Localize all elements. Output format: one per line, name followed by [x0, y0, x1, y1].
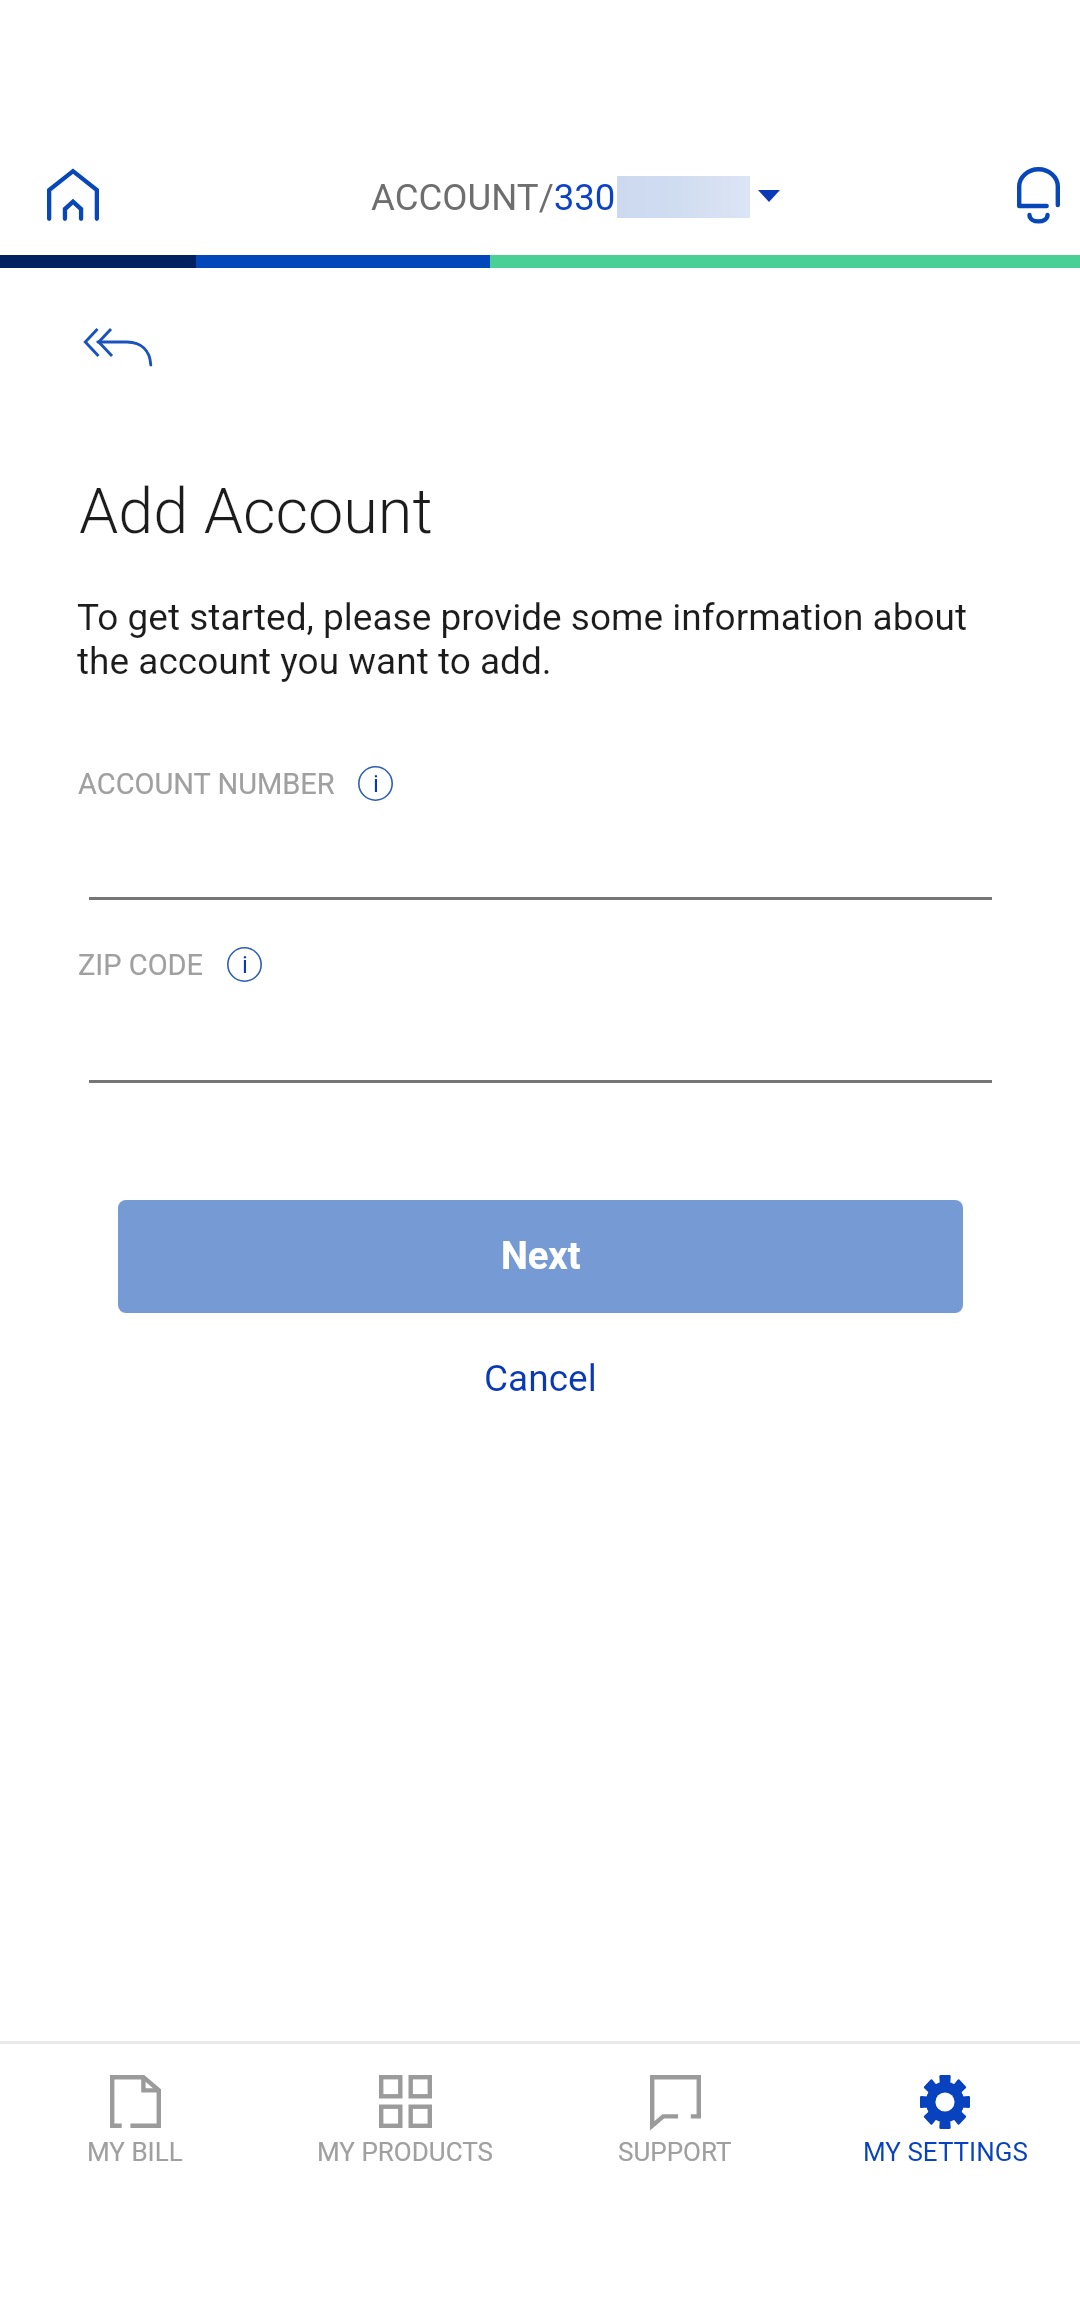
staticText: MY SETTINGS: [863, 2137, 1028, 2167]
staticText: ZIP CODE: [78, 948, 204, 982]
staticText: ACCOUNT NUMBER: [78, 767, 335, 801]
button[interactable]: Home: [18, 140, 128, 250]
button[interactable]: SUPPORT: [540, 2044, 810, 2300]
staticText: Next: [501, 1234, 581, 1279]
button[interactable]: MY BILL: [0, 2044, 270, 2300]
button[interactable]: MY SETTINGS: [810, 2044, 1080, 2300]
button[interactable]: ACCOUNT NUMBER: [78, 765, 394, 821]
staticText: i: [373, 770, 379, 798]
staticText: Add Account: [79, 475, 433, 549]
button[interactable]: Notifications: [985, 140, 1080, 250]
button[interactable]: Select account: [340, 160, 800, 244]
staticText: i: [242, 951, 248, 979]
staticText: Cancel: [484, 1357, 597, 1400]
button[interactable]: ZIP CODE: [78, 946, 263, 1002]
button[interactable]: Back: [50, 300, 190, 405]
staticText: MY BILL: [87, 2137, 183, 2167]
staticText: MY PRODUCTS: [317, 2137, 493, 2167]
staticText: ACCOUNT/330: [371, 176, 616, 219]
button[interactable]: More info about ZIP CODE: [226, 946, 263, 983]
staticText: SUPPORT: [618, 2137, 732, 2167]
staticText: To get started, please provide some info…: [77, 596, 1002, 683]
button[interactable]: More info about ACCOUNT NUMBER: [357, 765, 394, 802]
button[interactable]: Cancel: [440, 1338, 640, 1418]
button[interactable]: Next: [118, 1200, 963, 1313]
button[interactable]: MY PRODUCTS: [270, 2044, 540, 2300]
